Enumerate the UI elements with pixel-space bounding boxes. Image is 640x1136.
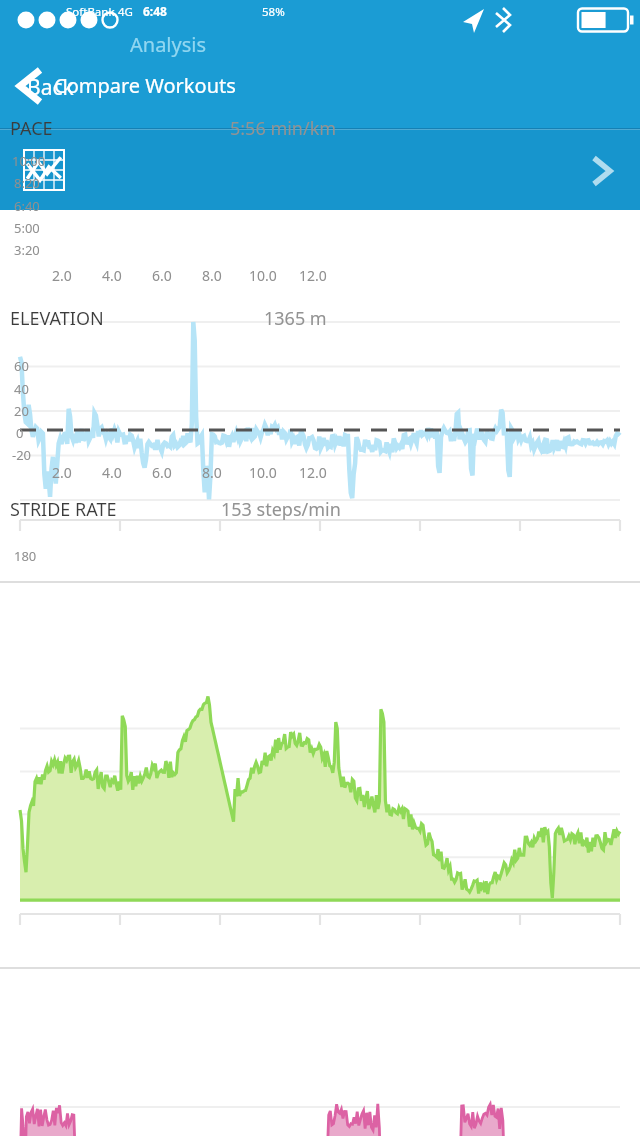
staticText: -20 — [12, 446, 32, 464]
staticText: 20 — [14, 402, 29, 420]
staticText: 60 — [14, 357, 29, 375]
staticText: 40 — [14, 380, 29, 398]
staticText: 2.0 — [52, 463, 72, 482]
staticText: 1365 m — [264, 306, 327, 331]
staticText: 5:56 min/km — [230, 116, 337, 141]
staticText: 8.0 — [202, 266, 222, 285]
staticText: 0 — [16, 424, 24, 442]
staticText: 3:20 — [14, 241, 40, 259]
staticText: 4G — [118, 4, 133, 20]
staticText: 8.0 — [202, 463, 222, 482]
staticText: 10:00 — [12, 152, 46, 170]
staticText: Back — [27, 73, 74, 102]
staticText: 12.0 — [299, 463, 327, 482]
staticText: 4.0 — [102, 266, 122, 285]
staticText: 8:20 — [14, 174, 40, 192]
staticText: 2.0 — [52, 266, 72, 285]
staticText: ELEVATION — [10, 306, 104, 331]
button[interactable]: Back — [0, 60, 140, 115]
staticText: 6.0 — [152, 266, 172, 285]
staticText: Analysis — [130, 31, 207, 58]
staticText: PACE — [10, 116, 53, 141]
staticText: 180 — [14, 547, 37, 565]
staticText: 10.0 — [249, 463, 277, 482]
staticText: 6:48 — [143, 3, 167, 19]
staticText: 6:40 — [14, 197, 40, 215]
staticText: 5:00 — [14, 219, 40, 237]
staticText: 6.0 — [152, 463, 172, 482]
staticText: STRIDE RATE — [10, 497, 117, 522]
staticText: 58% — [262, 4, 285, 20]
staticText: 10.0 — [249, 266, 277, 285]
staticText: 153 steps/min — [221, 497, 341, 522]
staticText: SoftBank — [66, 4, 115, 20]
button[interactable]: Compare Workouts — [0, 65, 640, 105]
staticText: 12.0 — [299, 266, 327, 285]
staticText: Compare Workouts — [54, 72, 236, 99]
staticText: 4.0 — [102, 463, 122, 482]
